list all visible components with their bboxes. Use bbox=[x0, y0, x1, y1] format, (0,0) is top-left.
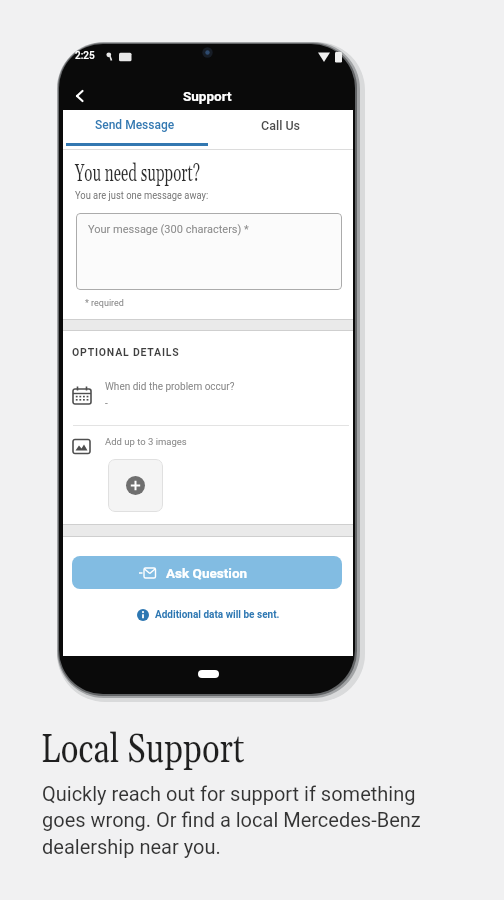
staticText: OPTIONAL DETAILS bbox=[72, 346, 180, 358]
staticText: Your message (300 characters) * bbox=[88, 223, 249, 236]
button[interactable]: When did the problem occur? bbox=[105, 381, 345, 409]
staticText: When did the problem occur? bbox=[105, 381, 235, 393]
staticText: Local Support bbox=[41, 724, 245, 776]
staticText: Support bbox=[183, 88, 232, 104]
button[interactable] bbox=[108, 459, 163, 512]
button[interactable]: Additional data will be sent. bbox=[63, 604, 353, 626]
staticText: Add up to 3 images bbox=[105, 436, 187, 447]
staticText: 2:25 bbox=[75, 50, 95, 62]
staticText: Send Message bbox=[95, 118, 175, 132]
button[interactable]: Call Us bbox=[208, 110, 353, 140]
staticText: Quickly reach out for support if somethi… bbox=[42, 782, 421, 859]
staticText: - bbox=[105, 398, 108, 410]
staticText: Call Us bbox=[261, 118, 301, 133]
staticText: Additional data will be sent. bbox=[155, 609, 280, 621]
button[interactable]: Ask Question bbox=[72, 556, 342, 589]
button[interactable]: Your message (300 characters) * bbox=[76, 213, 342, 290]
staticText: * required bbox=[85, 298, 124, 309]
button[interactable] bbox=[67, 84, 93, 108]
staticText: You need support? bbox=[75, 159, 200, 189]
staticText: Ask Question bbox=[166, 565, 248, 581]
staticText: You are just one message away: bbox=[75, 189, 208, 202]
button[interactable]: Send Message bbox=[63, 110, 207, 140]
